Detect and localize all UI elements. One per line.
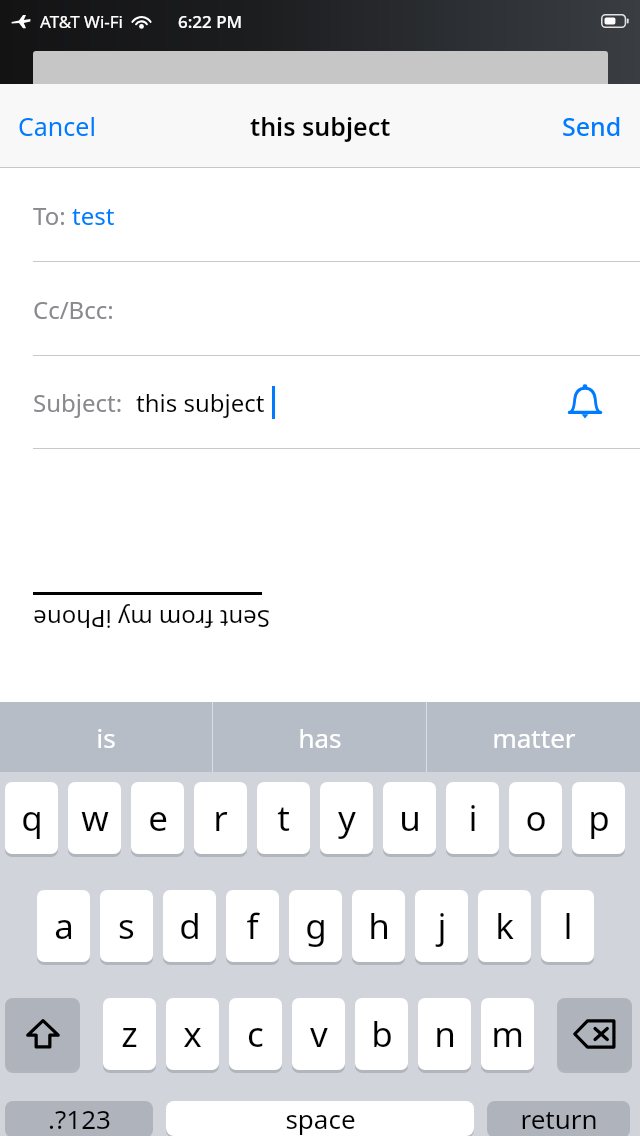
button[interactable]: has [213, 702, 426, 772]
staticText: To: [33, 199, 72, 232]
staticText: w [81, 794, 109, 842]
button[interactable]: is [0, 702, 212, 772]
staticText: i [468, 794, 478, 842]
staticText: b [371, 1010, 393, 1058]
button[interactable]: l [541, 890, 594, 962]
button[interactable]: v [292, 998, 345, 1070]
button[interactable]: c [229, 998, 282, 1070]
button[interactable]: e [131, 782, 184, 854]
button[interactable]: r [194, 782, 247, 854]
staticText: m [491, 1010, 524, 1058]
staticText: is [96, 720, 116, 755]
button[interactable]: Cancel [0, 97, 110, 155]
button[interactable]: j [415, 890, 468, 962]
staticText: space [285, 1101, 356, 1136]
staticText: g [305, 902, 327, 950]
staticText: x [183, 1010, 202, 1058]
staticText: Cc/Bcc: [33, 293, 114, 326]
button[interactable]: Sent from my iPhone [0, 449, 640, 626]
button[interactable]: m [481, 998, 534, 1070]
staticText: Sent from my iPhone [33, 603, 270, 636]
staticText: matter [492, 720, 576, 755]
button[interactable]: t [257, 782, 310, 854]
button[interactable]: space [166, 1101, 474, 1136]
staticText: d [179, 902, 201, 950]
staticText: a [54, 902, 74, 950]
staticText: y [338, 794, 356, 842]
staticText: test [72, 199, 115, 232]
staticText: v [310, 1010, 328, 1058]
staticText: this subject [250, 109, 391, 143]
button[interactable]: g [289, 890, 342, 962]
staticText: c [247, 1010, 264, 1058]
button[interactable]: b [355, 998, 408, 1070]
button[interactable]: y [320, 782, 373, 854]
button[interactable]: i [446, 782, 499, 854]
staticText: return [520, 1101, 598, 1136]
button[interactable]: d [163, 890, 216, 962]
staticText: AT&T Wi-Fi [40, 10, 123, 33]
button[interactable]: Notify me about this thread [560, 377, 610, 429]
staticText: f [246, 902, 259, 950]
button[interactable]: matter [427, 702, 640, 772]
staticText: q [21, 794, 43, 842]
button[interactable]: u [383, 782, 436, 854]
button[interactable]: f [226, 890, 279, 962]
button[interactable]: k [478, 890, 531, 962]
button[interactable]: .?123 [5, 1101, 153, 1136]
button[interactable]: z [103, 998, 156, 1070]
staticText: n [434, 1010, 456, 1058]
button[interactable]: n [418, 998, 471, 1070]
button[interactable]: q [5, 782, 58, 854]
button[interactable]: Shift [5, 998, 80, 1070]
staticText: t [277, 794, 290, 842]
staticText: p [588, 794, 610, 842]
staticText: Cancel [18, 109, 96, 143]
staticText: k [495, 902, 514, 950]
staticText: this subject [136, 386, 265, 419]
staticText: Send [562, 109, 622, 143]
staticText: z [121, 1010, 138, 1058]
staticText: .?123 [48, 1101, 111, 1136]
button[interactable]: Backspace [557, 998, 632, 1070]
button[interactable]: s [100, 890, 153, 962]
button[interactable]: Subject: [0, 356, 640, 449]
button[interactable]: Send [548, 97, 640, 155]
button[interactable]: a [37, 890, 90, 962]
staticText: Subject: [33, 386, 123, 419]
staticText: 6:22 PM [178, 10, 243, 33]
button[interactable]: o [509, 782, 562, 854]
staticText: h [368, 902, 390, 950]
staticText: s [118, 902, 135, 950]
staticText: j [437, 902, 447, 950]
staticText: o [525, 794, 547, 842]
button[interactable]: h [352, 890, 405, 962]
staticText: l [563, 902, 573, 950]
button[interactable]: p [572, 782, 625, 854]
button[interactable]: To: [0, 168, 640, 262]
button[interactable]: x [166, 998, 219, 1070]
staticText: r [213, 794, 228, 842]
button[interactable]: return [487, 1101, 630, 1136]
button[interactable]: w [68, 782, 121, 854]
staticText: e [148, 794, 168, 842]
staticText: u [399, 794, 421, 842]
button[interactable]: Cc/Bcc: [0, 262, 640, 356]
staticText: has [298, 720, 342, 755]
